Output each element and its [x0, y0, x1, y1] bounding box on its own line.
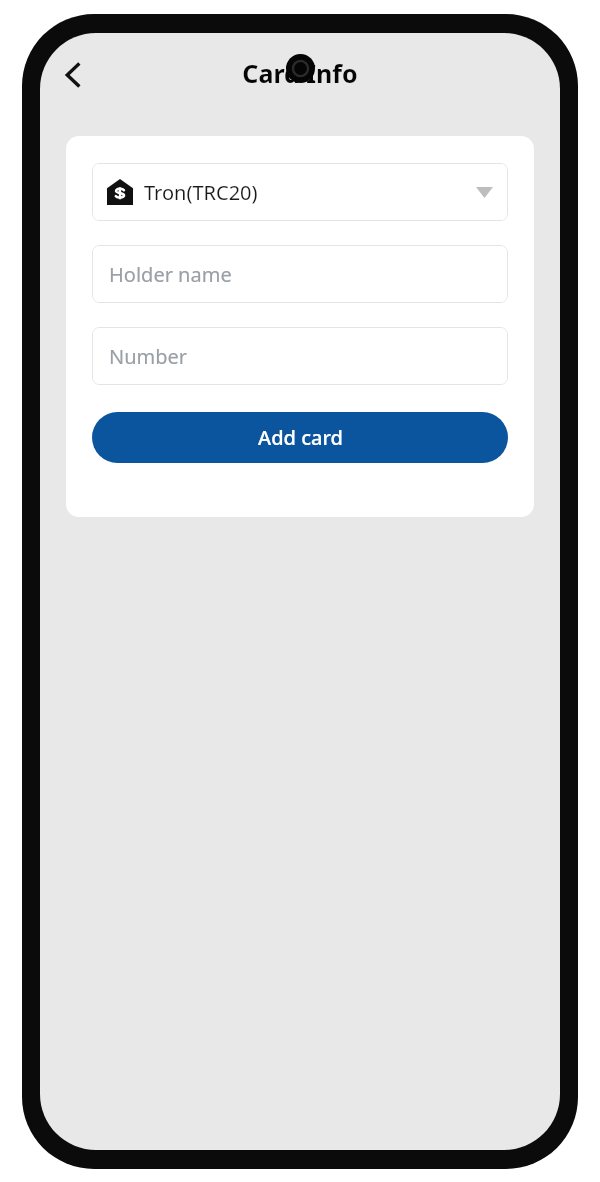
button[interactable]: Number: [92, 327, 508, 385]
staticText: Card Info: [242, 56, 358, 90]
button[interactable]: Back: [48, 49, 100, 101]
staticText: Tron(TRC20): [144, 179, 258, 206]
button[interactable]: Tron(TRC20): [92, 163, 508, 221]
staticText: Holder name: [109, 261, 232, 288]
staticText: Add card: [258, 424, 343, 451]
button[interactable]: Holder name: [92, 245, 508, 303]
button[interactable]: Add card: [92, 412, 508, 463]
staticText: Number: [109, 343, 188, 370]
